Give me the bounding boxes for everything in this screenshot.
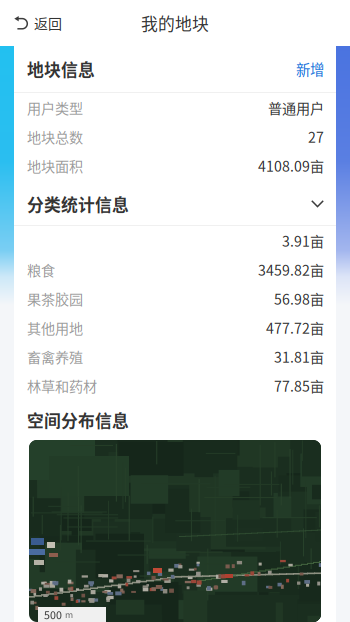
- staticText: 3459.82亩: [258, 259, 324, 280]
- button[interactable]: 新增: [296, 59, 324, 79]
- staticText: 地块信息: [27, 57, 95, 81]
- staticText: 31.81亩: [274, 346, 324, 367]
- staticText: 新增: [296, 59, 324, 79]
- staticText: 3.91亩: [282, 230, 324, 251]
- staticText: 地块总数: [27, 126, 83, 147]
- staticText: 返回: [34, 13, 62, 33]
- staticText: 地块面积: [27, 155, 83, 176]
- staticText: 分类统计信息: [27, 192, 129, 216]
- staticText: 4108.09亩: [258, 155, 324, 176]
- staticText: 空间分布信息: [27, 408, 129, 432]
- staticText: 果茶胶园: [27, 288, 83, 309]
- button[interactable]: 返回: [0, 0, 76, 46]
- staticText: m: [65, 608, 73, 621]
- staticText: 用户类型: [27, 97, 83, 118]
- staticText: 畜禽养殖: [27, 346, 83, 367]
- staticText: 粮食: [27, 259, 55, 280]
- staticText: 林草和药材: [27, 375, 97, 396]
- staticText: 其他用地: [27, 317, 83, 338]
- staticText: 27: [308, 126, 324, 147]
- staticText: 普通用户: [268, 97, 324, 118]
- staticText: 477.72亩: [266, 317, 324, 338]
- staticText: 56.98亩: [274, 288, 324, 309]
- button[interactable]: 分类统计信息: [14, 183, 336, 225]
- staticText: 77.85亩: [274, 375, 324, 396]
- staticText: 我的地块: [141, 11, 209, 35]
- staticText: 500: [44, 607, 62, 622]
